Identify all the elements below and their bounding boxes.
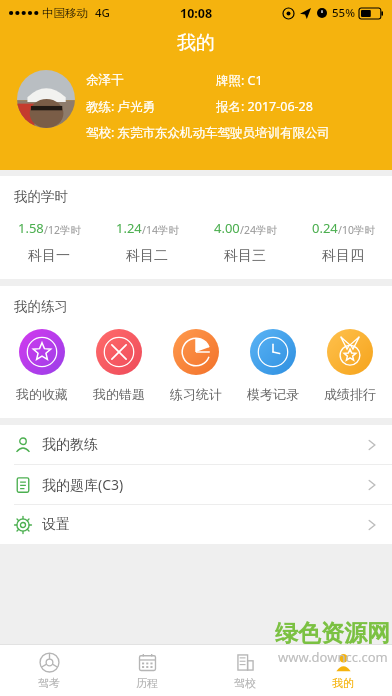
- staticText: 驾考: [38, 676, 60, 690]
- button[interactable]: 我的错题: [80, 329, 157, 402]
- staticText: 0.24: [312, 219, 338, 237]
- staticText: 驾校: 东莞市东众机动车驾驶员培训有限公司: [86, 124, 331, 141]
- staticText: 科目三: [224, 247, 266, 265]
- button[interactable]: 我的题库(C3): [0, 465, 392, 504]
- staticText: 设置: [42, 516, 70, 534]
- staticText: 牌照: C1: [216, 72, 263, 89]
- staticText: 报名: 2017-06-28: [216, 98, 313, 115]
- button[interactable]: 驾校: [196, 645, 294, 696]
- staticText: 我的教练: [42, 436, 98, 454]
- button[interactable]: 模考记录: [234, 329, 311, 402]
- button[interactable]: 1.24: [98, 219, 196, 265]
- staticText: 我的题库(C3): [42, 475, 124, 494]
- staticText: 驾校: [234, 676, 256, 690]
- staticText: 我的: [332, 676, 354, 690]
- staticText: /12学时: [44, 223, 81, 237]
- staticText: /10学时: [338, 223, 375, 237]
- button[interactable]: 4.00: [196, 219, 294, 265]
- staticText: 模考记录: [247, 386, 299, 402]
- button[interactable]: 历程: [98, 645, 196, 696]
- button[interactable]: 1.58: [0, 219, 98, 265]
- button[interactable]: 0.24: [294, 219, 392, 265]
- staticText: 余泽干: [86, 72, 216, 88]
- button[interactable]: 驾考: [0, 645, 98, 696]
- button[interactable]: 我的教练: [0, 425, 392, 464]
- staticText: 4.00: [214, 219, 240, 237]
- staticText: 我的练习: [14, 298, 68, 315]
- staticText: www.downcc.com: [278, 648, 388, 666]
- staticText: 历程: [136, 676, 158, 690]
- staticText: 中国移动: [42, 6, 88, 20]
- button[interactable]: 我的收藏: [4, 329, 80, 402]
- staticText: 科目二: [126, 247, 168, 265]
- button[interactable]: 我的: [294, 645, 392, 696]
- staticText: 我的错题: [93, 386, 145, 402]
- button[interactable]: 设置: [0, 505, 392, 544]
- staticText: /14学时: [142, 223, 179, 237]
- staticText: 1.58: [18, 219, 44, 237]
- staticText: 4G: [95, 5, 110, 21]
- button[interactable]: 成绩排行: [311, 329, 388, 402]
- staticText: 我的: [177, 31, 215, 55]
- staticText: 我的收藏: [16, 386, 68, 402]
- staticText: 成绩排行: [324, 386, 376, 402]
- staticText: 教练: 卢光勇: [86, 98, 216, 115]
- staticText: /24学时: [240, 223, 277, 237]
- staticText: 1.24: [116, 219, 142, 237]
- staticText: 我的学时: [14, 188, 68, 205]
- staticText: 55%: [332, 5, 355, 21]
- button[interactable]: 练习统计: [157, 329, 234, 402]
- staticText: 科目四: [322, 247, 364, 265]
- staticText: 科目一: [28, 247, 70, 265]
- staticText: 10:08: [180, 5, 213, 22]
- staticText: 练习统计: [170, 386, 222, 402]
- staticText: 绿色资源网: [275, 619, 390, 648]
